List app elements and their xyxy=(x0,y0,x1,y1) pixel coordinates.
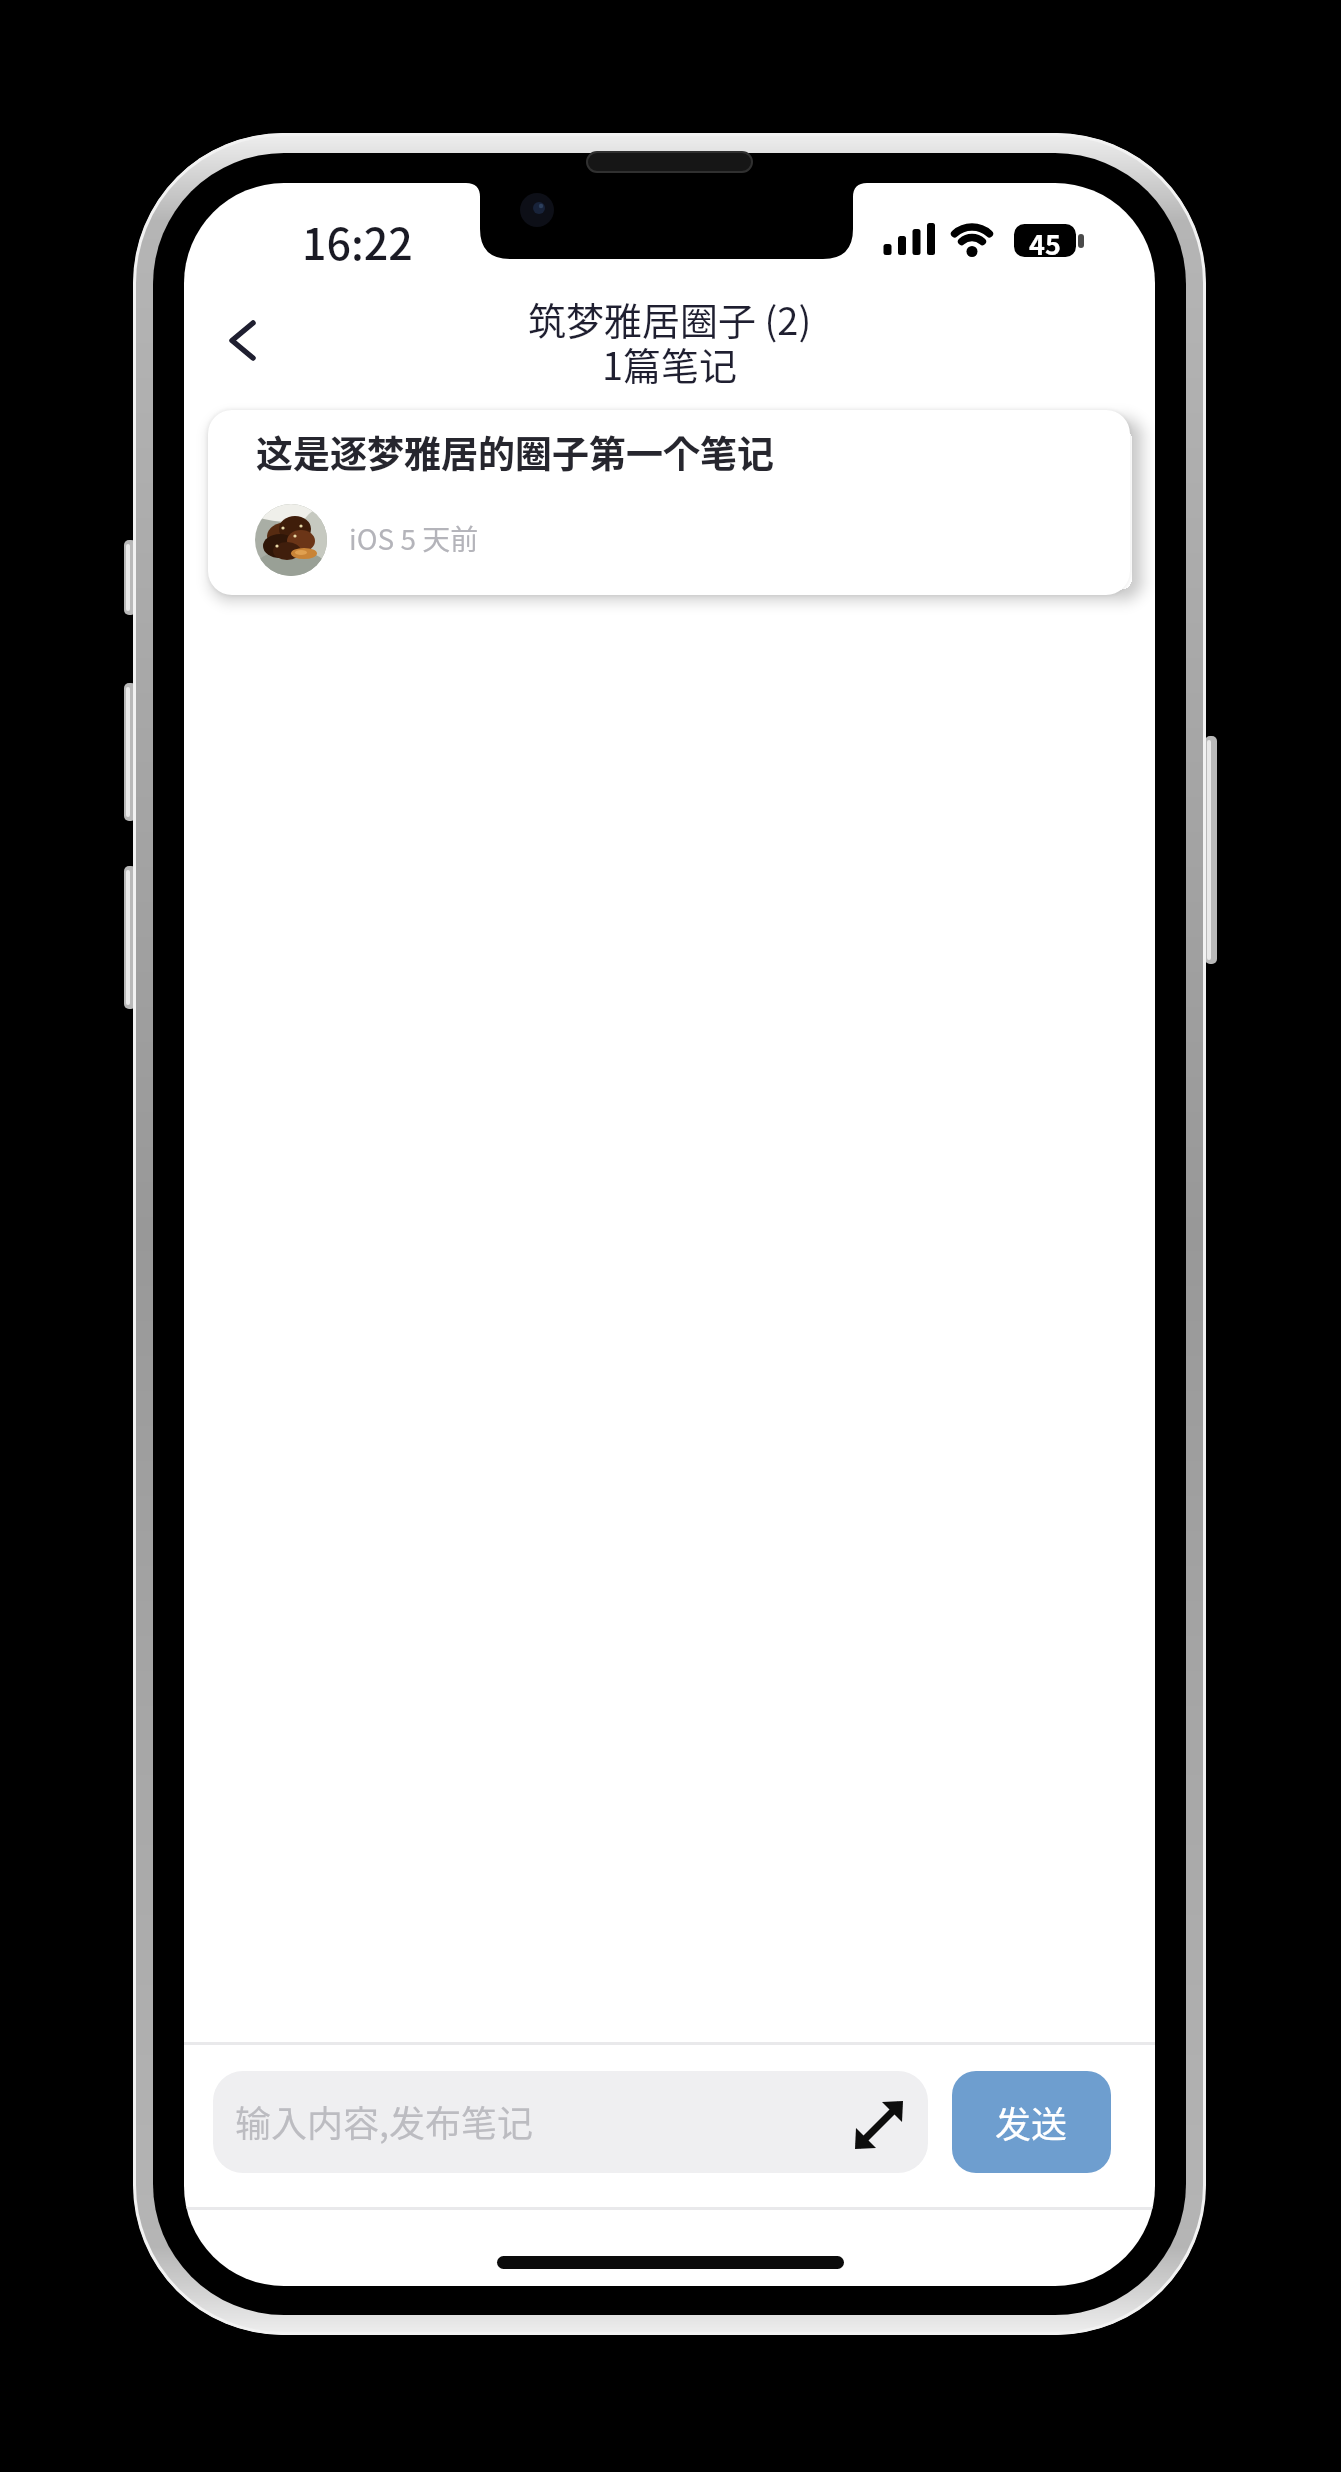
staticText: 16:22 xyxy=(302,210,413,272)
staticText: 1篇笔记 xyxy=(602,336,738,391)
staticText: 输入内容,发布笔记 xyxy=(235,2095,534,2147)
button[interactable]: 输入内容,发布笔记 xyxy=(213,2071,928,2173)
button[interactable] xyxy=(839,2088,914,2158)
staticText: iOS 5 天前 xyxy=(349,518,479,559)
staticText: 筑梦雅居圈子 (2) xyxy=(528,291,812,346)
button[interactable]: 发送 xyxy=(952,2071,1111,2173)
staticText: 发送 xyxy=(995,2096,1068,2148)
staticText: 这是逐梦雅居的圈子第一个笔记 xyxy=(256,425,774,479)
staticText: 45 xyxy=(1029,224,1061,257)
button[interactable] xyxy=(212,303,292,383)
button[interactable]: 这是逐梦雅居的圈子第一个笔记 xyxy=(208,410,1130,595)
